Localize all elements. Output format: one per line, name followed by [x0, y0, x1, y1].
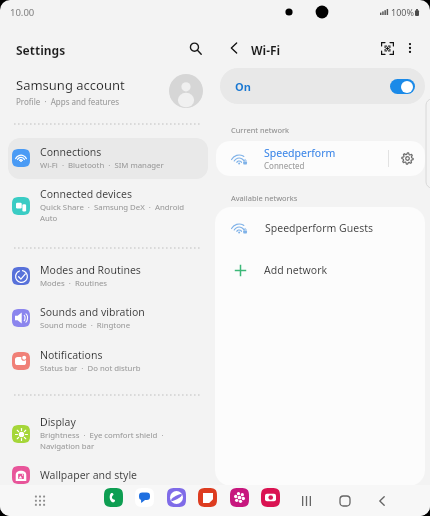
staticText: Status bar · Do not disturb — [40, 363, 141, 374]
button[interactable]: Connections — [8, 138, 208, 179]
button[interactable]: Connected devices — [8, 180, 208, 232]
button[interactable]: Internet — [167, 488, 186, 507]
button[interactable]: Wallpaper and style — [8, 459, 208, 492]
staticText: Sound mode · Ringtone — [40, 320, 131, 331]
button[interactable]: Apps — [33, 493, 47, 507]
button[interactable]: Network settings — [389, 141, 425, 176]
button[interactable]: Back — [374, 493, 390, 509]
staticText: Wi-Fi — [251, 42, 281, 58]
button[interactable]: Add network — [215, 248, 425, 292]
staticText: 10.00 — [10, 6, 35, 19]
staticText: Connections — [40, 145, 102, 159]
button[interactable]: Samsung account — [0, 72, 215, 110]
staticText: Modes · Routines — [40, 278, 108, 289]
button[interactable]: Camera — [261, 488, 280, 507]
staticText: Brightness · Eye comfort shield · Naviga… — [40, 430, 164, 452]
staticText: Add network — [264, 263, 328, 277]
staticText: On — [235, 79, 390, 94]
button[interactable]: On — [220, 68, 425, 104]
staticText: Quick Share · Samsung DeX · Android Auto — [40, 202, 185, 224]
button[interactable]: Speedperform Guests — [215, 207, 425, 248]
staticText: Notifications — [40, 348, 103, 362]
staticText: Connected devices — [40, 187, 133, 201]
button[interactable]: Display — [8, 408, 208, 460]
button[interactable]: Speedperform — [216, 141, 425, 176]
button[interactable]: Scan QR code — [374, 35, 400, 61]
button[interactable]: More options — [397, 35, 423, 61]
button[interactable]: Messages — [135, 488, 154, 507]
staticText: Speedperform — [264, 146, 336, 160]
staticText: Available networks — [231, 193, 298, 203]
staticText: Current network — [231, 125, 290, 135]
button[interactable]: Home — [337, 493, 353, 509]
staticText: Samsung account — [16, 76, 125, 94]
staticText: Display — [40, 415, 76, 429]
staticText: Wi-Fi · Bluetooth · SIM manager — [40, 160, 164, 171]
staticText: Profile · Apps and features — [16, 96, 120, 107]
button[interactable]: Back — [221, 35, 247, 61]
button[interactable]: Notes — [198, 488, 217, 507]
staticText: Connected — [264, 160, 305, 171]
staticText: 100% — [391, 6, 414, 18]
button[interactable]: Search — [182, 35, 208, 61]
button[interactable]: Gallery — [230, 488, 249, 507]
staticText: Settings — [16, 42, 66, 58]
staticText: Modes and Routines — [40, 263, 141, 277]
button[interactable]: Recents — [298, 493, 314, 509]
button[interactable]: Sounds and vibration — [8, 298, 208, 339]
button[interactable]: Phone — [104, 488, 123, 507]
staticText: Sounds and vibration — [40, 305, 145, 319]
button[interactable]: Notifications — [8, 341, 208, 382]
staticText: Speedperform Guests — [265, 221, 373, 235]
staticText: Wallpaper and style — [40, 468, 138, 482]
button[interactable]: Modes and Routines — [8, 256, 208, 297]
